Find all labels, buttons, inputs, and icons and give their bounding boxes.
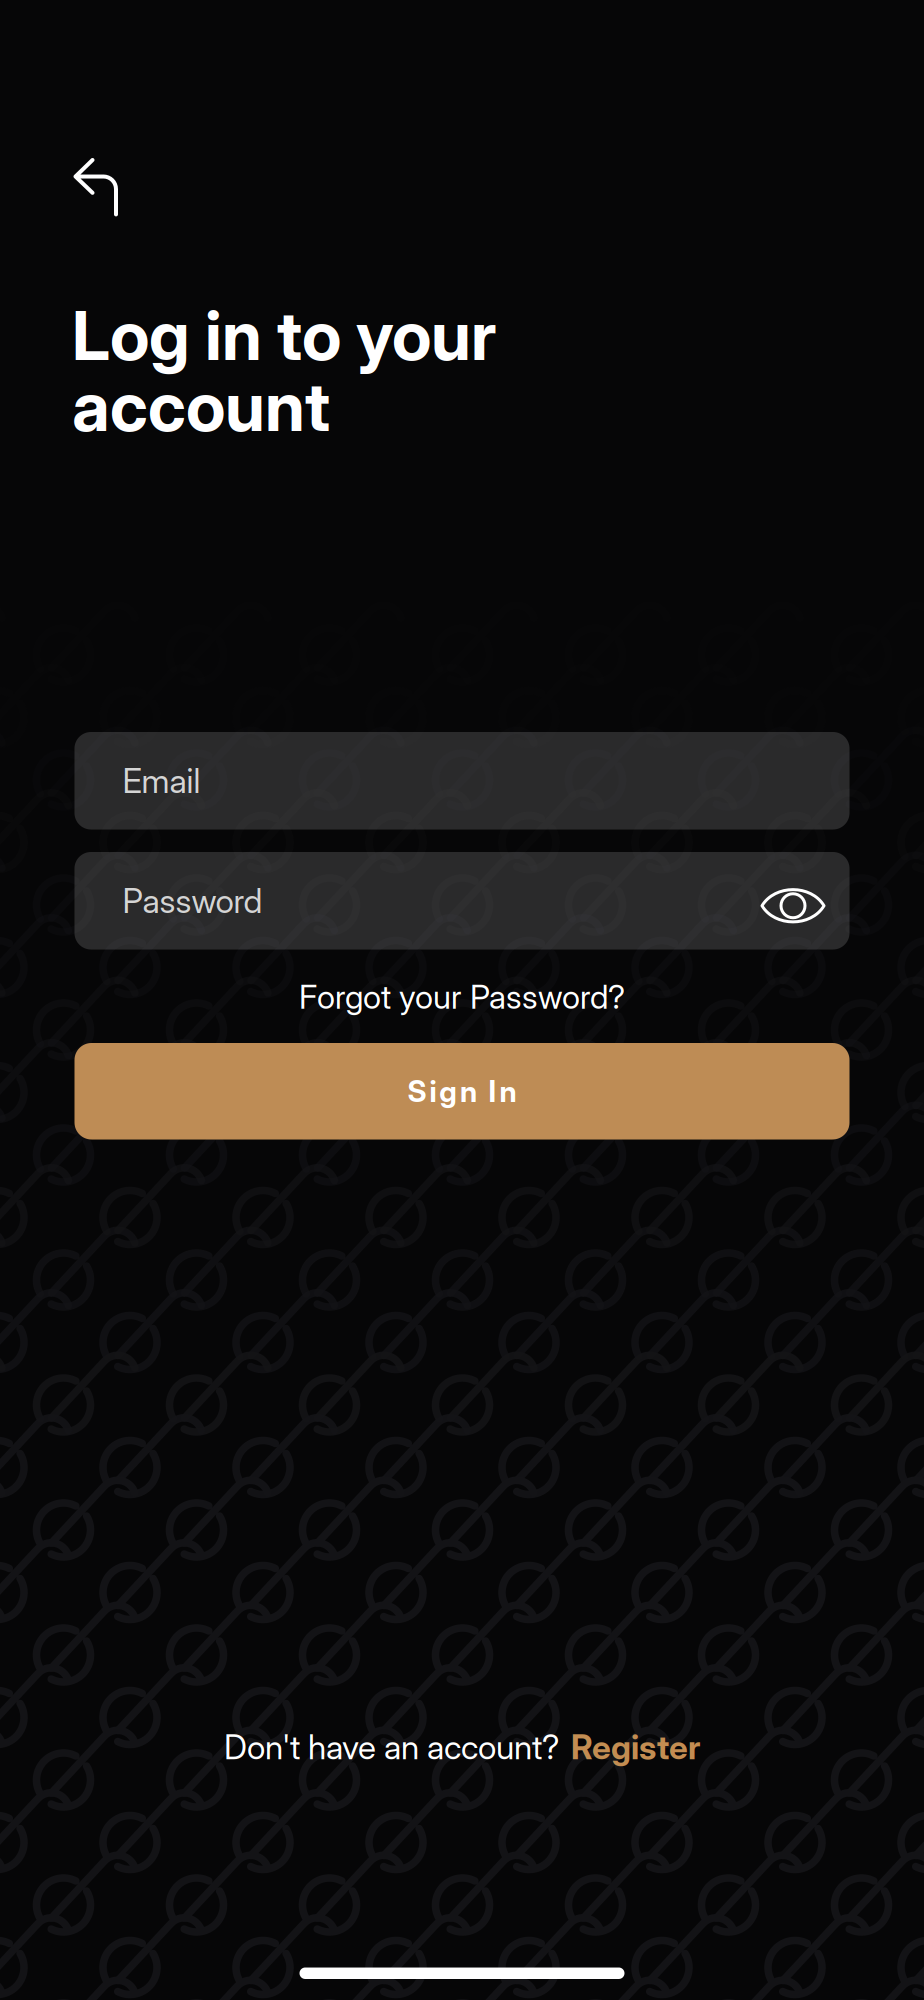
button[interactable]: Email	[74, 732, 849, 829]
staticText: Don't have an account?	[224, 1727, 559, 1767]
staticText: Sign In	[408, 1073, 516, 1109]
button[interactable]: Password	[74, 852, 849, 949]
staticText: Email	[122, 761, 200, 801]
staticText: Log in to your	[72, 294, 496, 376]
button[interactable]	[56, 144, 126, 224]
button[interactable]: Forgot your Password?	[299, 977, 625, 1016]
staticText: Password	[122, 881, 262, 921]
staticText: Forgot your Password?	[299, 977, 625, 1016]
staticText: account	[72, 365, 330, 447]
button[interactable]: Sign In	[74, 1043, 849, 1139]
staticText: Register	[571, 1727, 700, 1767]
button[interactable]: Register	[571, 1727, 700, 1767]
